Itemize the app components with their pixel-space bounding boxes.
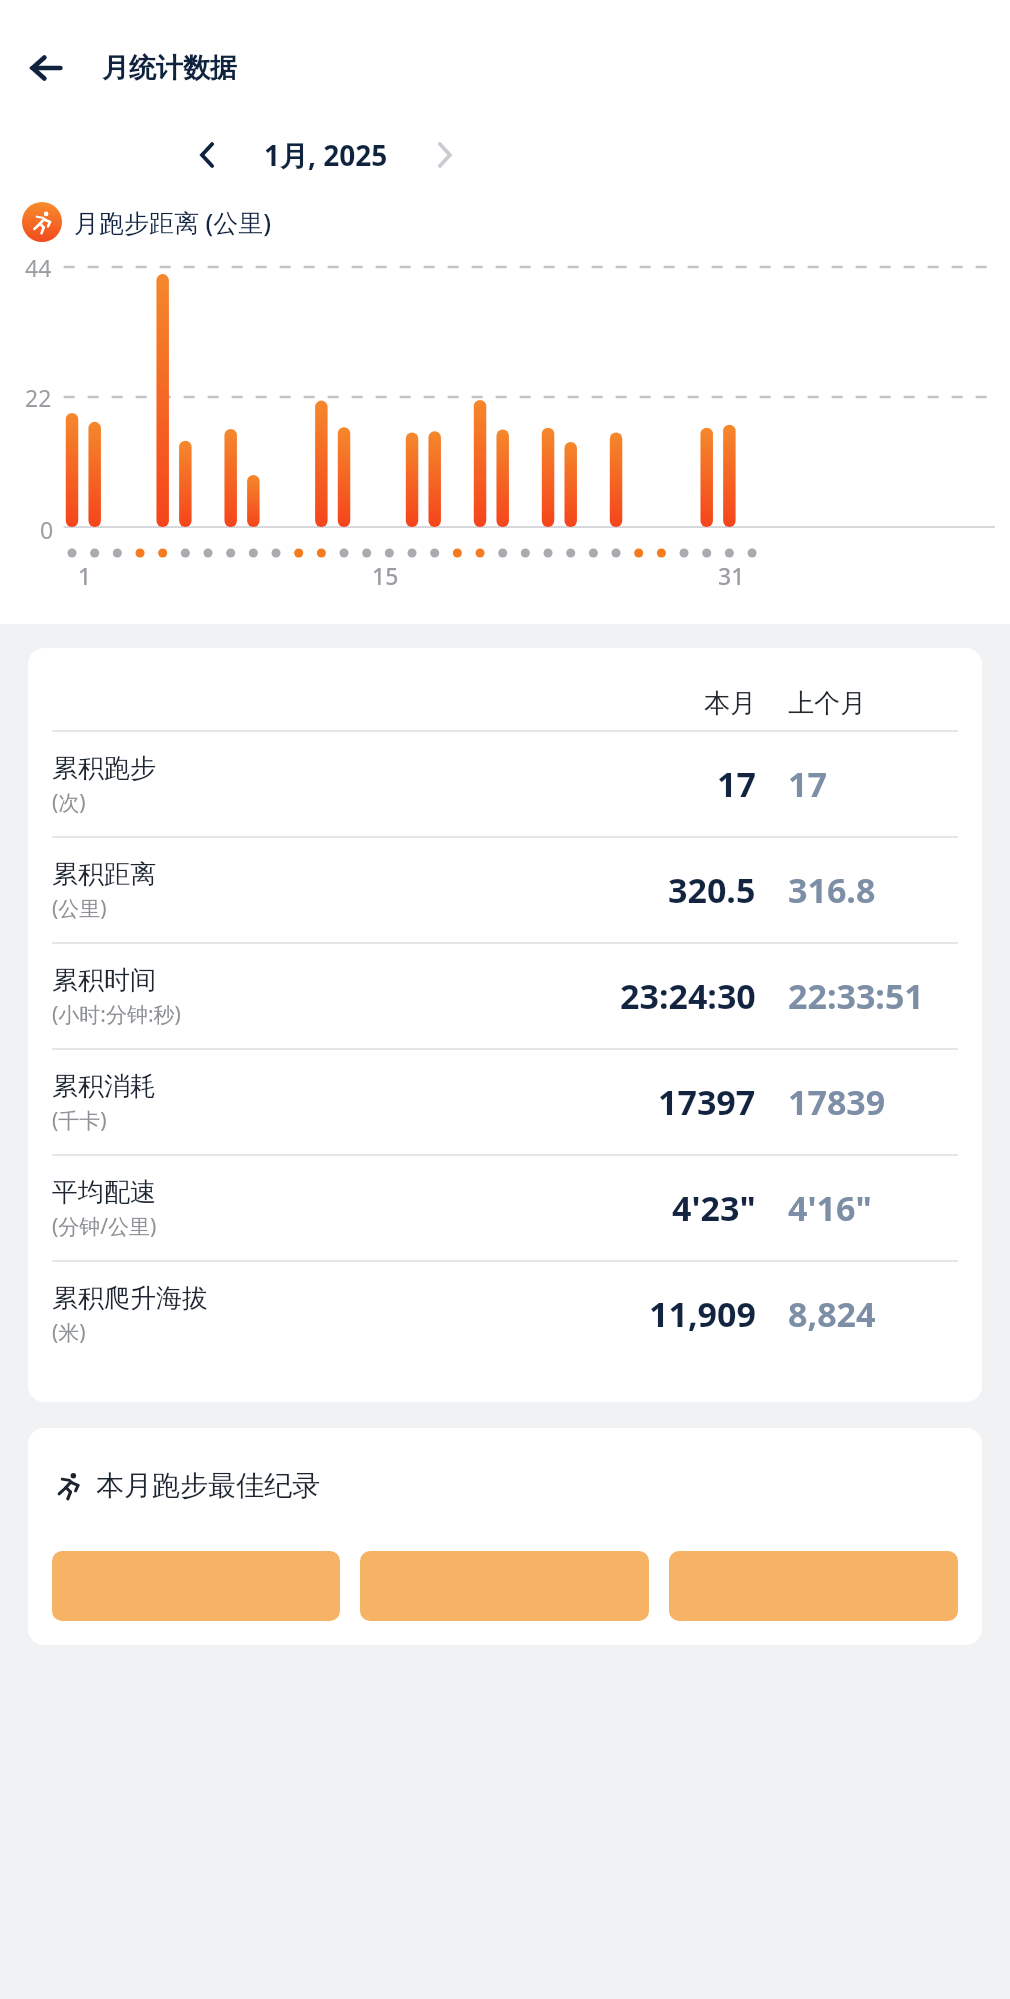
- staticText: 平均配速: [52, 1176, 156, 1209]
- staticText: 44: [25, 252, 52, 283]
- staticText: 累积距离: [52, 858, 156, 891]
- button[interactable]: Previous month: [180, 127, 236, 183]
- staticText: 17397: [658, 1079, 756, 1125]
- staticText: 月跑步距离 (公里): [74, 205, 272, 239]
- staticText: 1: [78, 560, 92, 591]
- staticText: (次): [52, 788, 86, 817]
- button[interactable]: 累积时间: [52, 944, 958, 1048]
- staticText: 累积爬升海拔: [52, 1282, 208, 1315]
- staticText: 1月, 2025: [264, 136, 388, 174]
- staticText: 上个月: [788, 687, 866, 720]
- button[interactable]: [52, 1551, 340, 1621]
- staticText: 4'23": [672, 1185, 756, 1231]
- staticText: (分钟/公里): [52, 1212, 157, 1241]
- button[interactable]: 平均配速: [52, 1156, 958, 1260]
- staticText: 22:33:51: [788, 973, 924, 1019]
- staticText: 累积跑步: [52, 752, 156, 785]
- staticText: 320.5: [668, 867, 756, 913]
- staticText: (千卡): [52, 1106, 107, 1135]
- button[interactable]: 累积消耗: [52, 1050, 958, 1154]
- button[interactable]: [360, 1551, 649, 1621]
- staticText: 31: [718, 560, 745, 591]
- staticText: (小时:分钟:秒): [52, 1000, 181, 1029]
- button[interactable]: Back: [16, 38, 76, 98]
- staticText: 17839: [788, 1079, 886, 1125]
- button[interactable]: 累积跑步: [52, 732, 958, 836]
- staticText: 22: [25, 382, 52, 413]
- staticText: 月统计数据: [102, 51, 237, 85]
- staticText: 本月跑步最佳纪录: [96, 1468, 320, 1503]
- staticText: 316.8: [788, 867, 876, 913]
- staticText: 累积时间: [52, 964, 156, 997]
- button[interactable]: 累积距离: [52, 838, 958, 942]
- staticText: 23:24:30: [620, 973, 756, 1019]
- staticText: 8,824: [788, 1291, 876, 1337]
- staticText: 15: [372, 560, 399, 591]
- staticText: 累积消耗: [52, 1070, 156, 1103]
- staticText: (米): [52, 1318, 86, 1347]
- staticText: 本月: [704, 687, 756, 720]
- staticText: 11,909: [649, 1291, 756, 1337]
- staticText: 4'16": [788, 1185, 872, 1231]
- button[interactable]: Next month: [416, 127, 472, 183]
- staticText: (公里): [52, 894, 107, 923]
- staticText: 17: [788, 761, 827, 807]
- staticText: 0: [40, 514, 54, 545]
- button[interactable]: 累积爬升海拔: [52, 1262, 958, 1366]
- staticText: 17: [717, 761, 756, 807]
- button[interactable]: [669, 1551, 958, 1621]
